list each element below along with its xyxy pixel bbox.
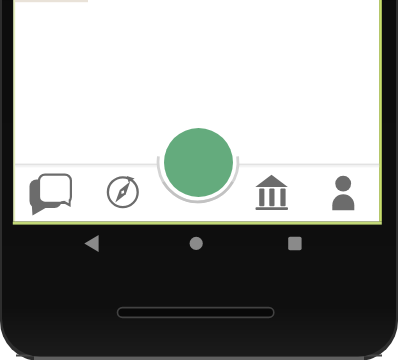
button[interactable]	[164, 128, 233, 197]
button[interactable]	[88, 166, 160, 221]
button[interactable]	[268, 226, 318, 261]
button[interactable]	[15, 166, 87, 221]
button[interactable]	[66, 226, 116, 261]
button[interactable]	[235, 166, 307, 221]
button[interactable]	[171, 226, 221, 261]
button[interactable]	[307, 166, 379, 221]
